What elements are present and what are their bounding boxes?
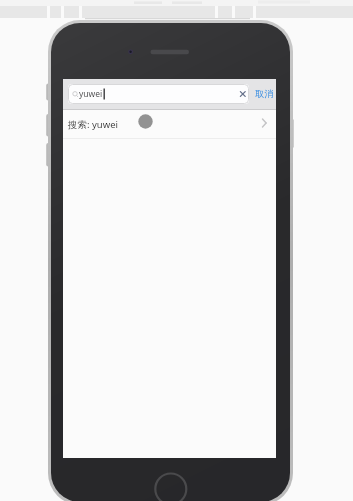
staticText: 搜索: yuwei	[68, 118, 119, 131]
button[interactable]: yuwei	[68, 84, 249, 104]
button[interactable]: 取消	[252, 84, 276, 104]
staticText: 取消	[255, 88, 274, 100]
button[interactable]: 搜索: yuwei	[63, 110, 276, 138]
staticText: yuwei	[79, 88, 103, 100]
